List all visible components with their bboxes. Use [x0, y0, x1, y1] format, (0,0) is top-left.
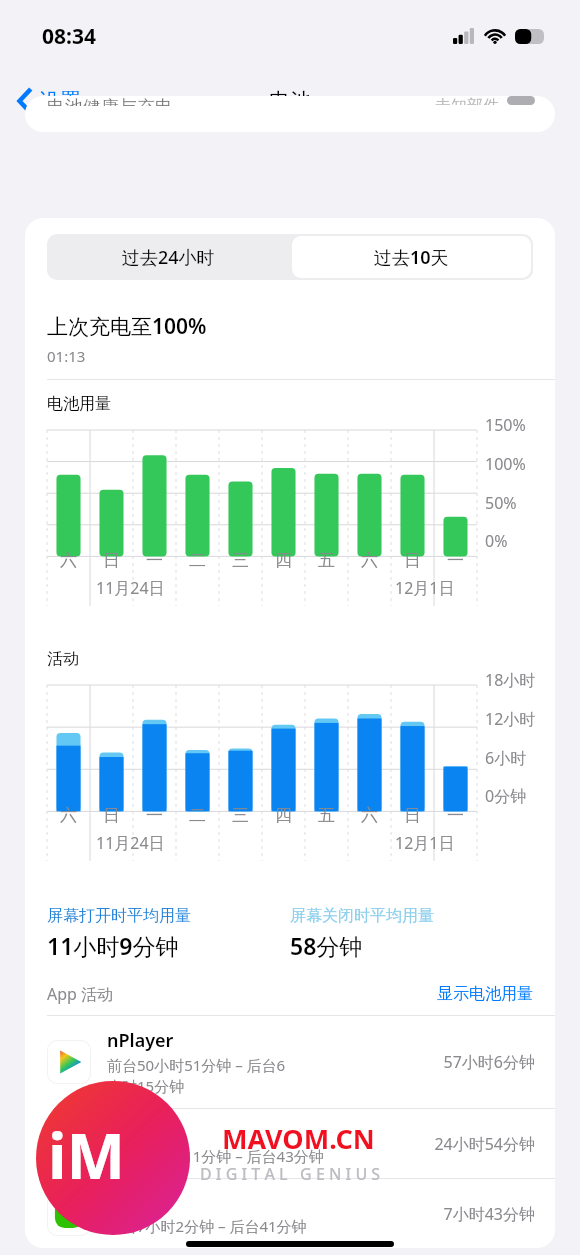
- staticText: 01:13: [47, 346, 86, 366]
- staticText: 未知部件: [435, 96, 499, 105]
- staticText: 日: [404, 550, 421, 571]
- staticText: 11月24日: [96, 832, 165, 854]
- staticText: 三: [232, 805, 249, 826]
- staticText: 12月1日: [395, 577, 455, 599]
- staticText: 微信: [107, 1191, 143, 1214]
- staticText: 前台7小时2分钟 – 后台41分钟: [107, 1216, 307, 1236]
- staticText: 24小时54分钟: [434, 1133, 535, 1155]
- other: App icon: [47, 1192, 91, 1236]
- staticText: 六: [60, 550, 77, 571]
- staticText: MAVOM.CN: [222, 1120, 375, 1157]
- staticText: 57小时6分钟: [443, 1051, 535, 1073]
- staticText: 浏览器: [107, 1121, 161, 1144]
- staticText: 屏幕打开时平均用量: [47, 906, 191, 926]
- staticText: 日: [404, 805, 421, 826]
- staticText: 显示电池用量: [437, 984, 533, 1004]
- staticText: 58分钟: [290, 930, 363, 961]
- staticText: 100%: [485, 453, 526, 475]
- staticText: 一: [146, 550, 163, 571]
- staticText: 二: [189, 550, 206, 571]
- staticText: 08:34: [42, 22, 96, 51]
- staticText: 六: [361, 550, 378, 571]
- other: App icon: [47, 1040, 91, 1084]
- staticText: D I G I T A L G E N I U S: [200, 1163, 381, 1185]
- staticText: 11小时9分钟: [47, 930, 179, 961]
- button[interactable]: 过去10天: [292, 236, 531, 278]
- staticText: 11月24日: [96, 577, 165, 599]
- staticText: 7小时43分钟: [443, 1203, 535, 1225]
- staticText: 18小时: [485, 669, 536, 691]
- staticText: 一: [447, 550, 464, 571]
- staticText: 电池健康与充电: [47, 96, 173, 106]
- staticText: nPlayer: [107, 1028, 174, 1053]
- staticText: 五: [318, 805, 335, 826]
- staticText: 0分钟: [485, 785, 527, 807]
- button[interactable]: App icon: [25, 1016, 555, 1108]
- staticText: 过去10天: [374, 245, 449, 270]
- staticText: 日: [103, 805, 120, 826]
- staticText: 12月1日: [395, 832, 455, 854]
- staticText: 电池用量: [47, 394, 111, 414]
- staticText: 四: [275, 550, 292, 571]
- staticText: 六: [60, 805, 77, 826]
- staticText: 三: [232, 550, 249, 571]
- staticText: 四: [275, 805, 292, 826]
- staticText: 12小时: [485, 708, 536, 730]
- staticText: 六: [361, 805, 378, 826]
- button[interactable]: App icon: [25, 1179, 555, 1248]
- staticText: 150%: [485, 414, 526, 436]
- staticText: 一: [146, 805, 163, 826]
- button[interactable]: 电池健康与充电: [25, 96, 555, 132]
- staticText: 上次充电至100%: [47, 312, 207, 341]
- staticText: 二: [189, 805, 206, 826]
- staticText: 前台24小时11分钟 – 后台43分钟: [107, 1146, 324, 1166]
- staticText: 过去24小时: [122, 245, 215, 270]
- staticText: 五: [318, 550, 335, 571]
- staticText: 50%: [485, 492, 517, 514]
- staticText: 一: [447, 805, 464, 826]
- staticText: 电池: [269, 88, 311, 114]
- button[interactable]: 显示电池用量: [437, 984, 533, 1004]
- staticText: 活动: [47, 649, 79, 669]
- staticText: iM: [48, 1113, 126, 1197]
- staticText: 屏幕关闭时平均用量: [290, 906, 434, 926]
- staticText: 6小时: [485, 747, 527, 769]
- staticText: 0%: [485, 530, 508, 552]
- staticText: 日: [103, 550, 120, 571]
- button[interactable]: 设置: [14, 84, 85, 118]
- button[interactable]: App icon: [25, 1109, 555, 1178]
- button[interactable]: 过去24小时: [47, 234, 290, 280]
- other: App icon: [47, 1122, 91, 1166]
- staticText: 设置: [39, 88, 81, 114]
- staticText: 前台50小时51分钟 – 后台6 小时15分钟: [107, 1055, 286, 1096]
- staticText: App 活动: [47, 983, 114, 1005]
